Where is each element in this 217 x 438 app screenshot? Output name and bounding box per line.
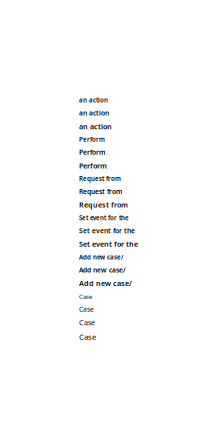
staticText: Case — [79, 318, 95, 327]
staticText: Set event for the — [79, 226, 135, 235]
staticText: Add new case/ — [79, 253, 123, 261]
staticText: Request from — [79, 187, 122, 196]
staticText: Request from — [79, 174, 121, 183]
staticText: Set event for the — [79, 214, 129, 222]
staticText: Request from — [79, 200, 128, 210]
staticText: an action — [79, 96, 108, 104]
staticText: an action — [79, 121, 112, 131]
staticText: Perform — [79, 135, 105, 144]
staticText: Case — [79, 331, 96, 342]
staticText: Add new case/ — [79, 265, 126, 274]
staticText: Add new case/ — [79, 278, 132, 288]
staticText: Perform — [79, 161, 107, 170]
staticText: Set event for the — [79, 239, 138, 249]
staticText: an action — [79, 108, 109, 117]
staticText: Perform — [79, 148, 105, 157]
staticText: Case — [79, 305, 94, 314]
staticText: Case — [79, 292, 92, 301]
